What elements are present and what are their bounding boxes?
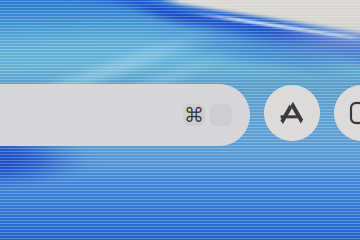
button[interactable]: App Store bbox=[264, 85, 320, 141]
button[interactable]: Preview bbox=[334, 85, 360, 141]
staticText: ⌘ bbox=[184, 104, 204, 126]
button[interactable]: ⌘ bbox=[0, 84, 250, 146]
